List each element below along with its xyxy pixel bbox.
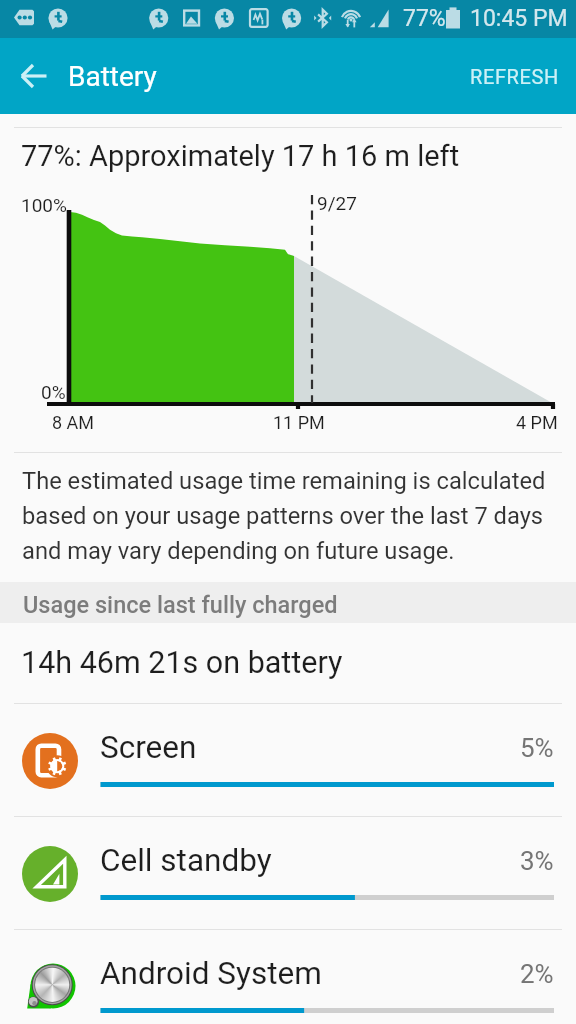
staticText: REFRESH (470, 65, 559, 88)
staticText: 5% (520, 733, 554, 763)
staticText: 100% (21, 194, 67, 216)
staticText: Android System (100, 955, 322, 992)
staticText: 11 PM (273, 412, 325, 433)
staticText: 10:45 PM (470, 5, 568, 32)
staticText: 3% (520, 846, 554, 876)
staticText: 4 PM (516, 412, 558, 433)
staticText: 0% (41, 381, 66, 403)
staticText: Cell standby (100, 842, 272, 879)
button[interactable]: Cell standby (0, 817, 576, 929)
staticText: Screen (100, 729, 197, 766)
button[interactable]: Screen (0, 704, 576, 816)
button[interactable]: Navigate up (4, 46, 64, 106)
staticText: 77%: Approximately 17 h 16 m left (21, 139, 460, 173)
button[interactable]: Android System (0, 930, 576, 1024)
staticText: The estimated usage time remaining is ca… (22, 467, 554, 564)
staticText: 8 AM (52, 412, 95, 433)
button[interactable]: REFRESH (453, 49, 576, 104)
staticText: 77% (403, 5, 446, 32)
staticText: 2% (520, 959, 554, 989)
staticText: Usage since last fully charged (23, 591, 338, 619)
staticText: 14h 46m 21s on battery (21, 645, 343, 681)
staticText: 9/27 (317, 192, 357, 214)
staticText: Battery (68, 60, 157, 93)
